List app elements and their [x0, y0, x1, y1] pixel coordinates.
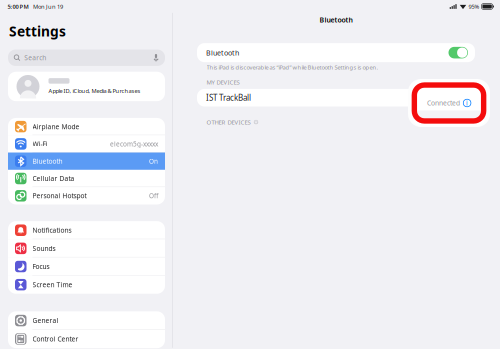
button[interactable]: Personal Hotspot — [8, 187, 165, 204]
button[interactable]: Control Center — [8, 330, 165, 348]
staticText: elecom5g-xxxxx — [110, 139, 158, 148]
staticText: IST TrackBall — [206, 92, 251, 103]
button[interactable]: Bluetooth — [8, 153, 165, 170]
staticText: Personal Hotspot — [32, 191, 86, 200]
staticText: On — [149, 157, 158, 165]
staticText: OTHER DEVICES — [206, 118, 250, 126]
staticText: Screen Time — [32, 280, 72, 289]
staticText: Cellular Data — [32, 174, 74, 183]
staticText: MY DEVICES — [206, 78, 239, 86]
staticText: i — [466, 99, 468, 107]
staticText: General — [32, 316, 58, 325]
staticText: 5:00 PM — [7, 3, 28, 10]
staticText: Connected — [427, 98, 460, 108]
staticText: Airplane Mode — [32, 122, 79, 131]
staticText: 95% — [469, 3, 480, 10]
staticText: Control Center — [32, 334, 78, 343]
staticText: Apple ID, iCloud, Media & Purchases — [48, 87, 140, 95]
staticText: Focus — [32, 262, 49, 271]
staticText: Bluetooth — [32, 157, 62, 166]
button[interactable]: Apple ID, iCloud, Media & Purchases — [8, 72, 165, 101]
staticText: Wi-Fi — [32, 139, 47, 148]
staticText: Connected — [424, 93, 457, 102]
staticText: Settings — [9, 22, 66, 40]
staticText: Mon Jun 19 — [33, 3, 63, 10]
button[interactable]: Focus — [8, 257, 165, 276]
staticText: Sounds — [32, 244, 55, 253]
button[interactable]: Wi-Fi — [8, 135, 165, 153]
staticText: Bluetooth — [206, 48, 239, 57]
staticText: i — [463, 93, 465, 102]
button[interactable]: Search — [8, 50, 165, 66]
staticText: Bluetooth — [319, 15, 352, 25]
button[interactable]: Airplane Mode — [8, 118, 165, 135]
staticText: Search — [24, 53, 46, 62]
button[interactable]: Screen Time — [8, 276, 165, 294]
button[interactable]: Cellular Data — [8, 170, 165, 187]
button[interactable]: Sounds — [8, 239, 165, 257]
button[interactable]: IST TrackBall — [197, 89, 475, 106]
staticText: Off — [149, 191, 158, 200]
button[interactable]: General — [8, 311, 165, 330]
staticText: This iPad is discoverable as “iPad” whil… — [206, 63, 378, 71]
button[interactable]: Notifications — [8, 221, 165, 239]
staticText: Notifications — [32, 226, 71, 235]
